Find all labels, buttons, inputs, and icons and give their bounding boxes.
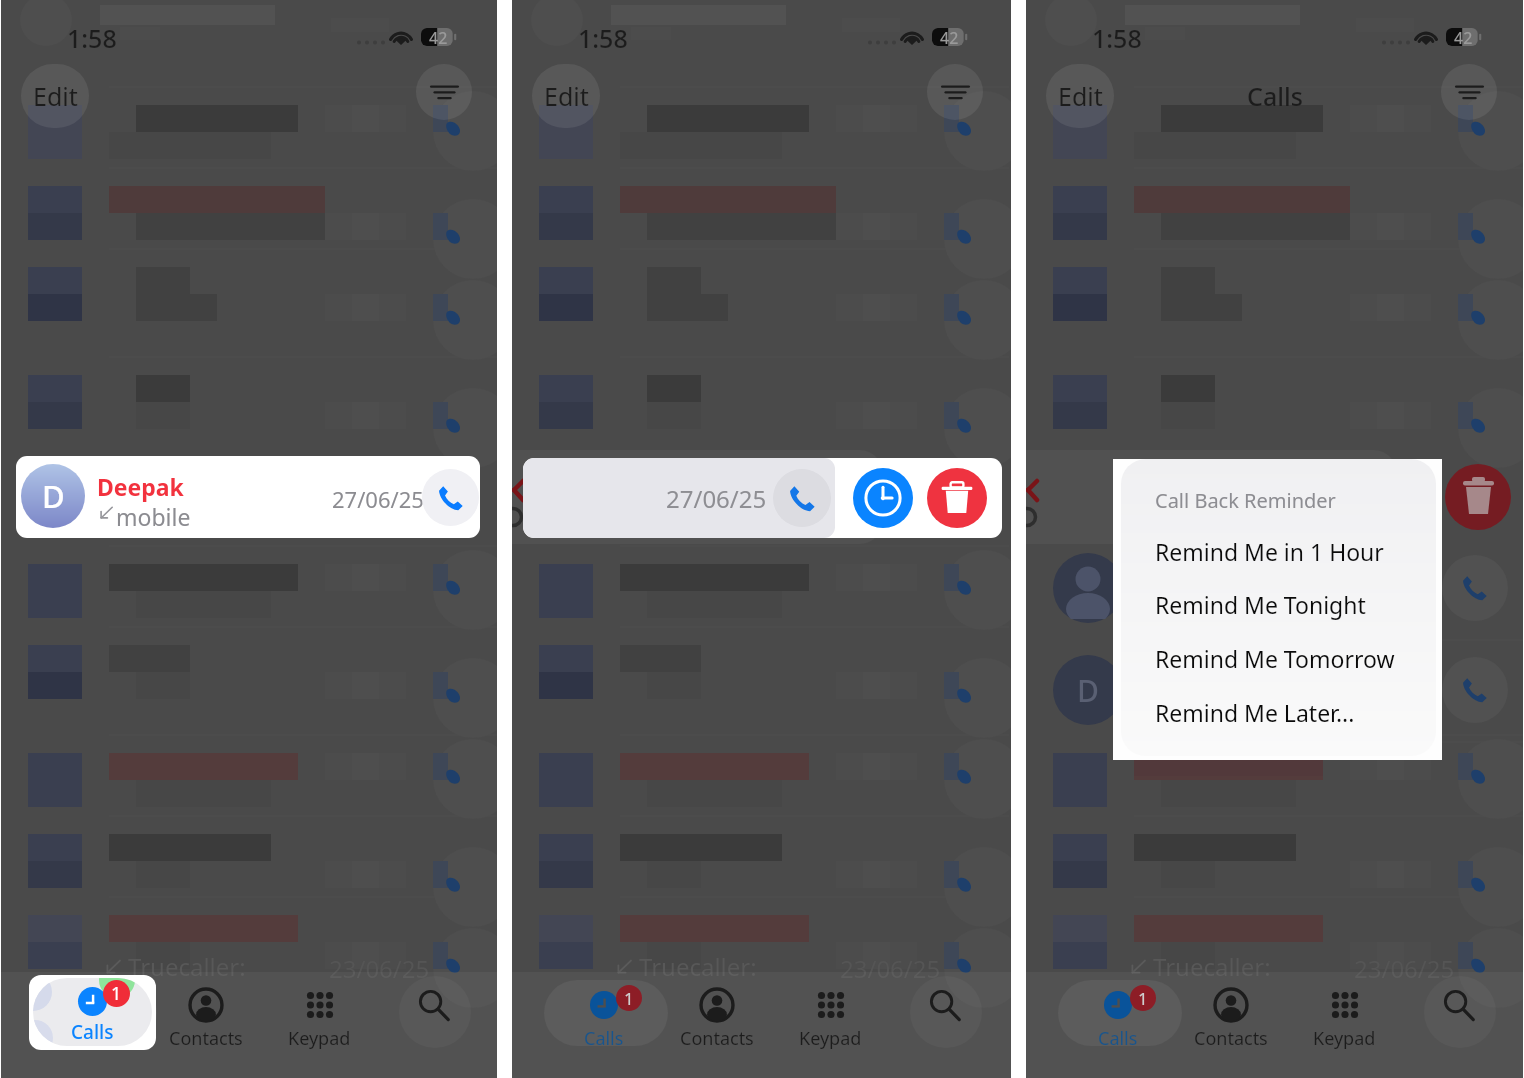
staticText: 42 bbox=[940, 27, 959, 49]
staticText: Remind Me Tomorrow bbox=[1155, 643, 1395, 674]
button[interactable]: Contacts bbox=[1175, 980, 1287, 1050]
button[interactable]: Filter bbox=[927, 64, 983, 120]
button[interactable]: Edit bbox=[532, 64, 600, 128]
button[interactable]: Search bbox=[889, 980, 1001, 1050]
staticText: Keypad bbox=[288, 1026, 351, 1050]
staticText: Contacts bbox=[1194, 1026, 1268, 1050]
staticText: 27/06/25 bbox=[666, 482, 767, 515]
button[interactable]: Remind Me Tomorrow bbox=[1121, 633, 1436, 683]
staticText: 27/06/25 bbox=[332, 484, 424, 514]
staticText: 1:58 bbox=[67, 21, 117, 55]
staticText: Keypad bbox=[799, 1026, 862, 1050]
staticText: 42 bbox=[429, 27, 448, 49]
staticText: 1 bbox=[1138, 987, 1148, 1010]
staticText: Remind Me Tonight bbox=[1155, 589, 1366, 620]
button[interactable]: Remind Me in 1 Hour bbox=[1121, 526, 1436, 576]
staticText: Calls bbox=[1247, 79, 1303, 113]
staticText: 23/06/25 bbox=[1354, 952, 1455, 985]
staticText: 1 bbox=[111, 981, 122, 1006]
staticText: Truecaller: bbox=[639, 950, 757, 983]
button[interactable]: Call bbox=[422, 469, 479, 526]
staticText: Deepak bbox=[97, 471, 184, 502]
staticText: Calls bbox=[73, 1026, 113, 1050]
button[interactable]: Search bbox=[378, 980, 490, 1050]
button[interactable]: Call back reminder bbox=[853, 468, 913, 528]
button[interactable]: Contacts bbox=[661, 980, 773, 1050]
button[interactable]: Filter bbox=[416, 64, 472, 120]
button[interactable]: 1 bbox=[29, 975, 156, 1050]
staticText: Edit bbox=[1058, 79, 1103, 113]
button[interactable]: Search bbox=[1403, 980, 1515, 1050]
staticText: 23/06/25 bbox=[329, 952, 430, 985]
staticText: D bbox=[1077, 670, 1099, 711]
button[interactable]: Keypad bbox=[774, 980, 886, 1050]
button[interactable]: Filter bbox=[1441, 64, 1497, 120]
button[interactable]: Contacts bbox=[150, 980, 262, 1050]
staticText: 1 bbox=[624, 987, 634, 1010]
staticText: Remind Me Later... bbox=[1155, 697, 1355, 728]
button[interactable]: Keypad bbox=[1288, 980, 1400, 1050]
staticText: Keypad bbox=[1313, 1026, 1376, 1050]
button[interactable]: Calls bbox=[548, 980, 660, 1050]
staticText: Truecaller: bbox=[1153, 950, 1271, 983]
button[interactable]: Delete bbox=[927, 468, 987, 528]
button[interactable]: Calls bbox=[1062, 980, 1174, 1050]
staticText: 42 bbox=[1454, 27, 1473, 49]
button[interactable]: 27/06/25 bbox=[523, 458, 835, 538]
staticText: Contacts bbox=[169, 1026, 243, 1050]
staticText: Calls bbox=[584, 1026, 624, 1050]
button[interactable]: Edit bbox=[21, 64, 89, 128]
staticText: Edit bbox=[544, 79, 589, 113]
staticText: Truecaller: bbox=[128, 950, 246, 983]
staticText: Calls bbox=[1098, 1026, 1138, 1050]
staticText: 1 bbox=[113, 987, 123, 1010]
staticText: D bbox=[42, 475, 65, 517]
staticText: Call Back Reminder bbox=[1155, 487, 1336, 514]
staticText: Contacts bbox=[680, 1026, 754, 1050]
button[interactable]: Remind Me Tonight bbox=[1121, 579, 1436, 629]
button[interactable]: Calls bbox=[37, 980, 149, 1050]
staticText: mobile bbox=[116, 501, 191, 532]
button[interactable]: D bbox=[16, 456, 480, 538]
staticText: 23/06/25 bbox=[840, 952, 941, 985]
staticText: 1:58 bbox=[1092, 21, 1142, 55]
staticText: Calls bbox=[71, 1019, 114, 1045]
button[interactable]: Remind Me Later... bbox=[1121, 687, 1436, 737]
staticText: Remind Me in 1 Hour bbox=[1155, 536, 1384, 567]
button[interactable]: Keypad bbox=[263, 980, 375, 1050]
staticText: 1:58 bbox=[578, 21, 628, 55]
button[interactable]: Edit bbox=[1046, 64, 1114, 128]
staticText: Edit bbox=[33, 79, 78, 113]
